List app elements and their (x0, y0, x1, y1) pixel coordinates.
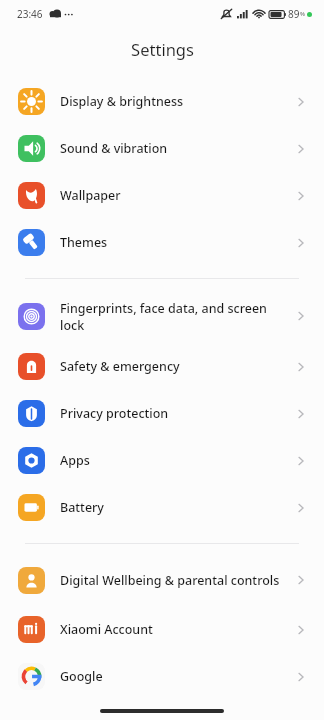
button[interactable]: Wallpaper (0, 172, 324, 219)
other: Open Privacy protection (294, 407, 308, 421)
other: Open Xiaomi Account (294, 623, 308, 637)
button[interactable]: Digital Wellbeing & parental controls (0, 554, 324, 606)
staticText: Digital Wellbeing & parental controls (60, 572, 286, 589)
staticText: Privacy protection (60, 405, 286, 422)
other: Open Fingerprints, face data, and screen… (294, 309, 308, 323)
staticText: Display & brightness (60, 93, 286, 110)
staticText: Settings (131, 38, 194, 60)
other: Open Apps (294, 454, 308, 468)
staticText: Xiaomi Account (60, 621, 286, 638)
button[interactable]: Xiaomi Account (0, 606, 324, 653)
staticText: Safety & emergency (60, 358, 286, 375)
button[interactable]: Safety & emergency (0, 343, 324, 390)
button[interactable]: Display & brightness (0, 78, 324, 125)
staticText: Battery (60, 499, 286, 516)
button[interactable]: Sound & vibration (0, 125, 324, 172)
staticText: Apps (60, 452, 286, 469)
other: Open Wallpaper (294, 189, 308, 203)
staticText: Wallpaper (60, 187, 286, 204)
staticText: 23:46 (17, 7, 43, 21)
other: Open Google (294, 670, 308, 684)
staticText: Google (60, 668, 286, 685)
other: Open Display & brightness (294, 95, 308, 109)
button[interactable]: Fingerprints, face data, and screen lock (0, 289, 324, 343)
other: Open Safety & emergency (294, 360, 308, 374)
other: Open Digital Wellbeing & parental contro… (294, 573, 308, 587)
button[interactable]: Apps (0, 437, 324, 484)
staticText: Fingerprints, face data, and screen lock (60, 300, 286, 333)
staticText: % (300, 10, 305, 18)
other: Open Battery (294, 501, 308, 515)
button[interactable]: Themes (0, 219, 324, 266)
staticText: Sound & vibration (60, 140, 286, 157)
other: Open Sound & vibration (294, 142, 308, 156)
button[interactable]: Battery (0, 484, 324, 531)
button[interactable]: Privacy protection (0, 390, 324, 437)
staticText: Themes (60, 234, 286, 251)
other: Open Themes (294, 236, 308, 250)
staticText: 89 (288, 7, 300, 21)
button[interactable]: Google (0, 653, 324, 700)
